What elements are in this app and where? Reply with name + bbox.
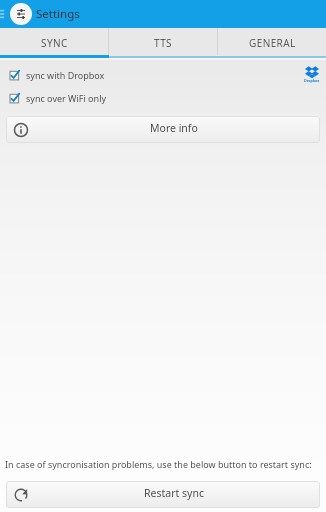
staticText: Restart sync — [144, 486, 204, 500]
staticText: sync with Dropbox — [26, 69, 105, 81]
button[interactable]: sync over WiFi only — [0, 91, 326, 105]
staticText: TTS — [154, 36, 173, 50]
staticText: SYNC — [41, 36, 68, 50]
button[interactable]: Open navigation menu — [0, 7, 12, 21]
staticText: GENERAL — [249, 36, 296, 50]
button[interactable]: TTS — [109, 28, 217, 55]
button[interactable]: More info — [6, 116, 320, 143]
button[interactable]: SYNC — [0, 28, 108, 55]
button[interactable]: Dropbox — [304, 66, 320, 83]
staticText: Dropbox — [304, 78, 320, 83]
button[interactable]: sync with Dropbox — [0, 68, 326, 82]
staticText: More info — [150, 121, 198, 135]
staticText: In case of syncronisation problems, use … — [5, 458, 312, 470]
staticText: sync over WiFi only — [26, 92, 107, 104]
button[interactable]: Settings — [10, 3, 32, 25]
button[interactable]: Restart sync — [6, 481, 320, 508]
button[interactable]: GENERAL — [218, 28, 326, 55]
staticText: Settings — [36, 6, 80, 22]
